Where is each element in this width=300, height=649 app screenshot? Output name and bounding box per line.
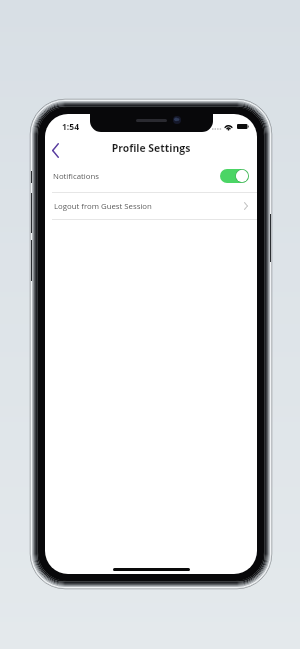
staticText: 1:54 [62, 121, 79, 133]
staticText: Profile Settings [45, 141, 257, 155]
staticText: Logout from Guest Session [54, 201, 152, 212]
button[interactable]: Notifications [45, 160, 257, 192]
staticText: Notifications [53, 171, 99, 182]
button[interactable]: Back [45, 133, 66, 159]
button[interactable]: Logout from Guest Session [45, 193, 257, 219]
button[interactable]: Notifications toggle [220, 169, 249, 183]
